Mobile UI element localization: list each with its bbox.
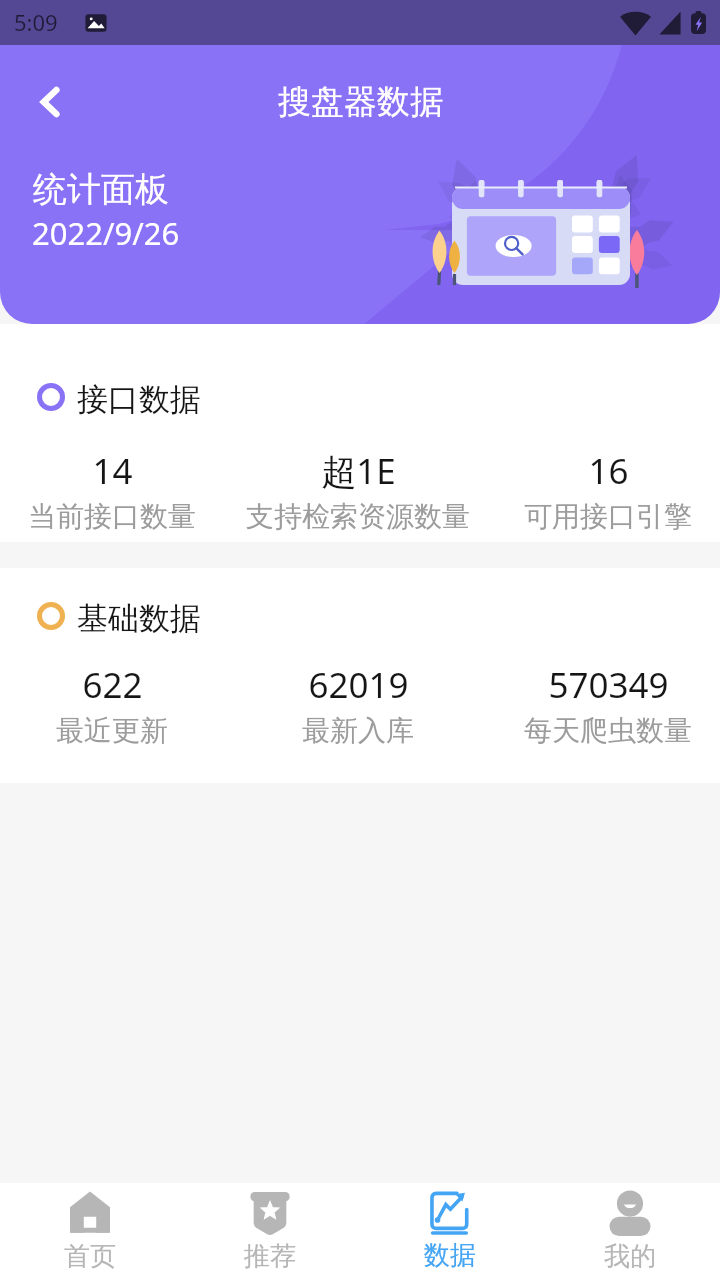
staticText: 570349 xyxy=(548,661,669,709)
staticText: 16 xyxy=(588,447,629,495)
staticText: 基础数据 xyxy=(77,599,201,638)
staticText: 接口数据 xyxy=(77,380,201,419)
staticText: 超1E xyxy=(321,447,396,495)
button[interactable]: 首页 xyxy=(0,1183,180,1280)
staticText: 搜盘器数据 xyxy=(278,81,443,123)
staticText: 我的 xyxy=(604,1240,656,1273)
staticText: 5:09 xyxy=(14,7,58,37)
staticText: 首页 xyxy=(64,1240,116,1273)
staticText: 622 xyxy=(82,661,143,709)
button[interactable]: Back xyxy=(25,76,77,128)
button[interactable]: 数据 xyxy=(360,1183,540,1280)
button[interactable]: 推荐 xyxy=(180,1183,360,1280)
staticText: 最近更新 xyxy=(56,713,168,748)
staticText: 支持检索资源数量 xyxy=(246,499,470,534)
staticText: 当前接口数量 xyxy=(28,499,196,534)
staticText: 数据 xyxy=(424,1239,476,1272)
staticText: 推荐 xyxy=(244,1240,296,1273)
staticText: 最新入库 xyxy=(302,713,414,748)
staticText: 每天爬虫数量 xyxy=(524,713,692,748)
staticText: 62019 xyxy=(308,661,409,709)
staticText: 2022/9/26 xyxy=(32,212,180,254)
button[interactable]: 我的 xyxy=(540,1183,720,1280)
staticText: 可用接口引擎 xyxy=(524,499,692,534)
staticText: 统计面板 xyxy=(33,168,169,211)
staticText: 14 xyxy=(92,447,133,495)
